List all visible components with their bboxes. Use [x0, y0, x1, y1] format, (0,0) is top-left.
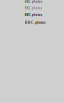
staticText: BBC photos: [25, 0, 42, 3]
staticText: BBC photos: [25, 6, 42, 10]
staticText: BBC photos: [25, 20, 46, 25]
staticText: BBC photos: [25, 13, 42, 17]
